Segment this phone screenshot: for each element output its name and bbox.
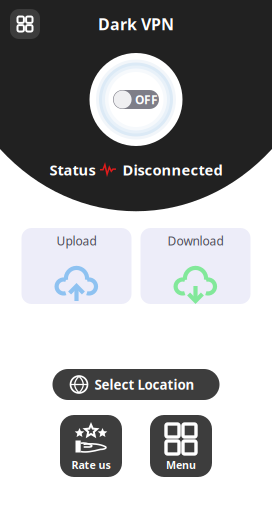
staticText: Menu (166, 458, 196, 472)
staticText: Rate us (71, 458, 110, 472)
staticText: Status (49, 160, 95, 179)
staticText: Upload (56, 233, 96, 249)
button[interactable]: Rate us (60, 415, 122, 477)
staticText: Download (167, 233, 223, 249)
staticText: Dark VPN (98, 13, 174, 35)
button[interactable]: Select Location (52, 369, 219, 400)
button[interactable]: Open menu (10, 9, 40, 39)
staticText: Disconnected (122, 160, 222, 179)
button[interactable]: Connection toggle, off (89, 53, 182, 146)
staticText: Select Location (94, 376, 194, 393)
button[interactable]: Menu (150, 415, 212, 477)
staticText: OFF (135, 91, 158, 107)
